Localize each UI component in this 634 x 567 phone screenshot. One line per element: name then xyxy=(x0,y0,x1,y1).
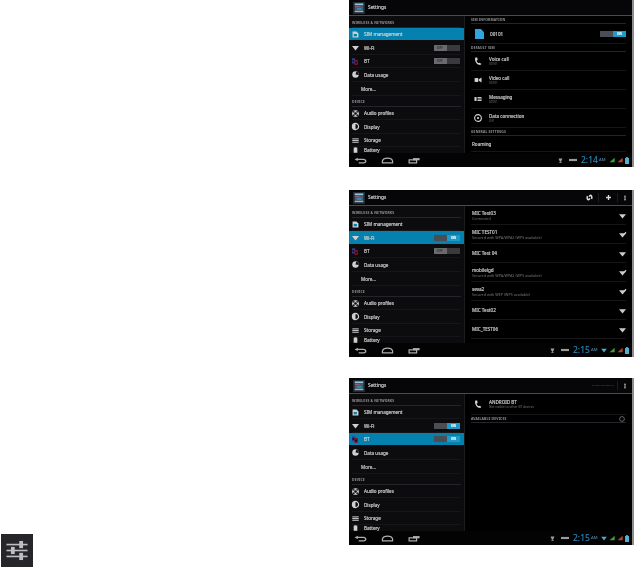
button[interactable]: SIM management xyxy=(349,28,464,40)
button[interactable]: BT xyxy=(349,245,464,257)
button[interactable]: SEARCH FOR DEVICES xyxy=(589,378,617,393)
staticText: Wi-Fi xyxy=(364,423,375,429)
staticText: OFF xyxy=(437,46,444,50)
staticText: Settings xyxy=(368,382,387,389)
button[interactable]: Audio profiles xyxy=(349,485,464,497)
button[interactable]: Data connection xyxy=(465,109,632,127)
staticText: Voice call xyxy=(489,56,509,62)
staticText: 00101 xyxy=(489,81,498,85)
button[interactable]: Display xyxy=(349,310,464,323)
button[interactable]: Messaging xyxy=(465,90,632,108)
button[interactable]: Storage xyxy=(349,512,464,524)
button[interactable]: BT xyxy=(349,433,464,445)
button[interactable]: Turn on xyxy=(434,45,460,51)
staticText: DEVICE xyxy=(352,289,365,294)
button[interactable]: More... xyxy=(349,272,464,285)
button[interactable]: Home xyxy=(380,155,395,166)
button[interactable]: Data usage xyxy=(349,446,464,459)
button[interactable]: Wi-Fi xyxy=(349,419,464,432)
staticText: Battery xyxy=(364,525,380,531)
button[interactable]: Turn on xyxy=(434,58,460,64)
button[interactable]: Home xyxy=(380,533,395,544)
staticText: Storage xyxy=(364,137,381,143)
button[interactable]: Recent apps xyxy=(407,345,422,356)
button[interactable]: Storage xyxy=(349,134,464,146)
button[interactable]: Battery xyxy=(349,147,464,153)
button[interactable]: Turn off xyxy=(434,423,460,429)
button[interactable]: MIC Test02 xyxy=(465,301,632,319)
button[interactable]: ANDROID BT xyxy=(465,394,632,414)
button[interactable]: Wi-Fi xyxy=(349,231,464,244)
button[interactable]: Back xyxy=(353,345,368,356)
button[interactable]: Display xyxy=(349,498,464,511)
staticText: SIM management xyxy=(364,409,403,415)
button[interactable]: More options xyxy=(618,190,631,205)
button[interactable]: Roaming xyxy=(465,136,632,151)
button[interactable]: MIC Test03 xyxy=(465,206,632,224)
staticText: MIC Test03 xyxy=(472,210,496,216)
button[interactable]: Turn off xyxy=(434,235,460,241)
button[interactable]: 00101 xyxy=(465,24,632,43)
button[interactable]: seva2 xyxy=(465,282,632,300)
button[interactable]: Recent apps xyxy=(407,533,422,544)
staticText: SIM management xyxy=(364,31,403,37)
button[interactable]: Turn off xyxy=(600,31,626,37)
staticText: Display xyxy=(364,502,380,508)
button[interactable]: Data usage xyxy=(349,258,464,271)
staticText: Data usage xyxy=(364,72,389,78)
staticText: More... xyxy=(361,464,377,470)
staticText: AVAILABLE DEVICES xyxy=(471,416,507,421)
staticText: Battery xyxy=(364,337,380,343)
button[interactable]: Back xyxy=(353,155,368,166)
staticText: OFF xyxy=(437,249,444,253)
button[interactable]: More options xyxy=(618,378,631,393)
button[interactable]: Settings xyxy=(352,378,390,393)
button[interactable]: Settings xyxy=(352,0,390,15)
staticText: AM xyxy=(591,535,598,541)
button[interactable]: MIC TEST01 xyxy=(465,225,632,243)
button[interactable]: MIC Test 04 xyxy=(465,244,632,262)
button[interactable]: Video call xyxy=(465,71,632,89)
button[interactable]: Recent apps xyxy=(407,155,422,166)
button[interactable]: Audio profiles xyxy=(349,297,464,309)
button[interactable]: Storage xyxy=(349,324,464,336)
staticText: Display xyxy=(364,314,380,320)
button[interactable]: Turn on xyxy=(434,248,460,254)
staticText: Audio profiles xyxy=(364,300,394,306)
staticText: AM xyxy=(591,347,598,353)
button[interactable]: Scan xyxy=(580,190,598,205)
button[interactable]: BT xyxy=(349,55,464,67)
staticText: DEVICE xyxy=(352,477,365,482)
button[interactable]: Audio profiles xyxy=(349,107,464,119)
button[interactable]: SIM management xyxy=(349,218,464,230)
staticText: Secured with WPA/WPA2 (WPS available) xyxy=(472,235,542,240)
button[interactable]: MIC_TEST06 xyxy=(465,320,632,338)
button[interactable]: Wi-Fi xyxy=(349,41,464,54)
button[interactable]: Data usage xyxy=(349,68,464,81)
staticText: Settings xyxy=(368,194,387,201)
button[interactable]: Settings xyxy=(1,534,33,567)
staticText: WIRELESS & NETWORKS xyxy=(352,210,395,215)
button[interactable]: More... xyxy=(349,460,464,473)
staticText: SIM INFORMATION xyxy=(471,17,506,22)
staticText: OFF xyxy=(437,59,444,63)
button[interactable]: More... xyxy=(349,82,464,95)
button[interactable]: Turn off xyxy=(434,436,460,442)
button[interactable]: mobilelgd xyxy=(465,263,632,281)
staticText: Storage xyxy=(364,327,381,333)
button[interactable]: SIM management xyxy=(349,406,464,418)
staticText: Data connection xyxy=(489,113,525,119)
button[interactable]: Battery xyxy=(349,525,464,531)
button[interactable]: Display xyxy=(349,120,464,133)
button[interactable]: Battery xyxy=(349,337,464,343)
button[interactable]: Back xyxy=(353,533,368,544)
button[interactable]: Home xyxy=(380,345,395,356)
staticText: Battery xyxy=(364,147,380,153)
button[interactable]: Voice call xyxy=(465,52,632,70)
button[interactable]: Settings xyxy=(352,190,390,205)
staticText: WIRELESS & NETWORKS xyxy=(352,20,395,25)
staticText: Display xyxy=(364,124,380,130)
button[interactable]: Add network xyxy=(599,190,617,205)
staticText: SEARCH FOR DEVICES xyxy=(592,384,614,387)
staticText: ON xyxy=(451,424,457,428)
